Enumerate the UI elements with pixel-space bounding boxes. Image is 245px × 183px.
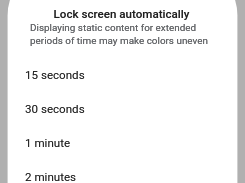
staticText: 30 seconds	[25, 102, 245, 116]
staticText: Displaying static content for extended p…	[30, 22, 223, 46]
staticText: 1 minute	[25, 136, 245, 150]
staticText: 15 seconds	[25, 68, 245, 82]
button[interactable]: 2 minutes	[0, 160, 245, 183]
button[interactable]: 30 seconds	[0, 92, 245, 126]
button[interactable]: 15 seconds	[0, 58, 245, 92]
staticText: 2 minutes	[25, 170, 245, 183]
staticText: Lock screen automatically	[0, 7, 244, 21]
button[interactable]: 1 minute	[0, 126, 245, 160]
